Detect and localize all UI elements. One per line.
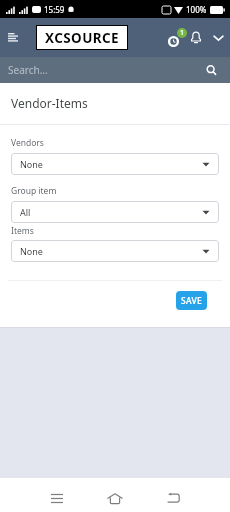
button[interactable] [107,493,123,504]
staticText: Items [11,225,34,237]
button[interactable]: 1 [167,28,187,48]
button[interactable] [8,33,18,42]
button[interactable]: XCSOURCE [36,25,128,50]
staticText: XCSOURCE [45,29,120,47]
staticText: SAVE [181,295,203,307]
staticText: 100% [186,4,207,15]
staticText: All [20,206,31,218]
button[interactable] [189,31,203,45]
staticText: 1 [180,28,185,38]
button[interactable]: SAVE [176,291,207,310]
button[interactable] [167,493,180,503]
button[interactable] [51,493,63,504]
staticText: Vendor-Items [11,95,88,111]
staticText: None [20,158,43,170]
button[interactable] [213,32,224,44]
staticText: Search... [8,63,48,77]
button[interactable]: None [11,240,219,262]
button[interactable]: Search... [0,57,230,83]
button[interactable]: None [11,153,219,175]
staticText: None [20,245,43,257]
button[interactable]: All [11,201,219,223]
staticText: Vendors [11,137,44,149]
staticText: Group item [11,185,57,197]
staticText: 15:59 [44,4,65,15]
